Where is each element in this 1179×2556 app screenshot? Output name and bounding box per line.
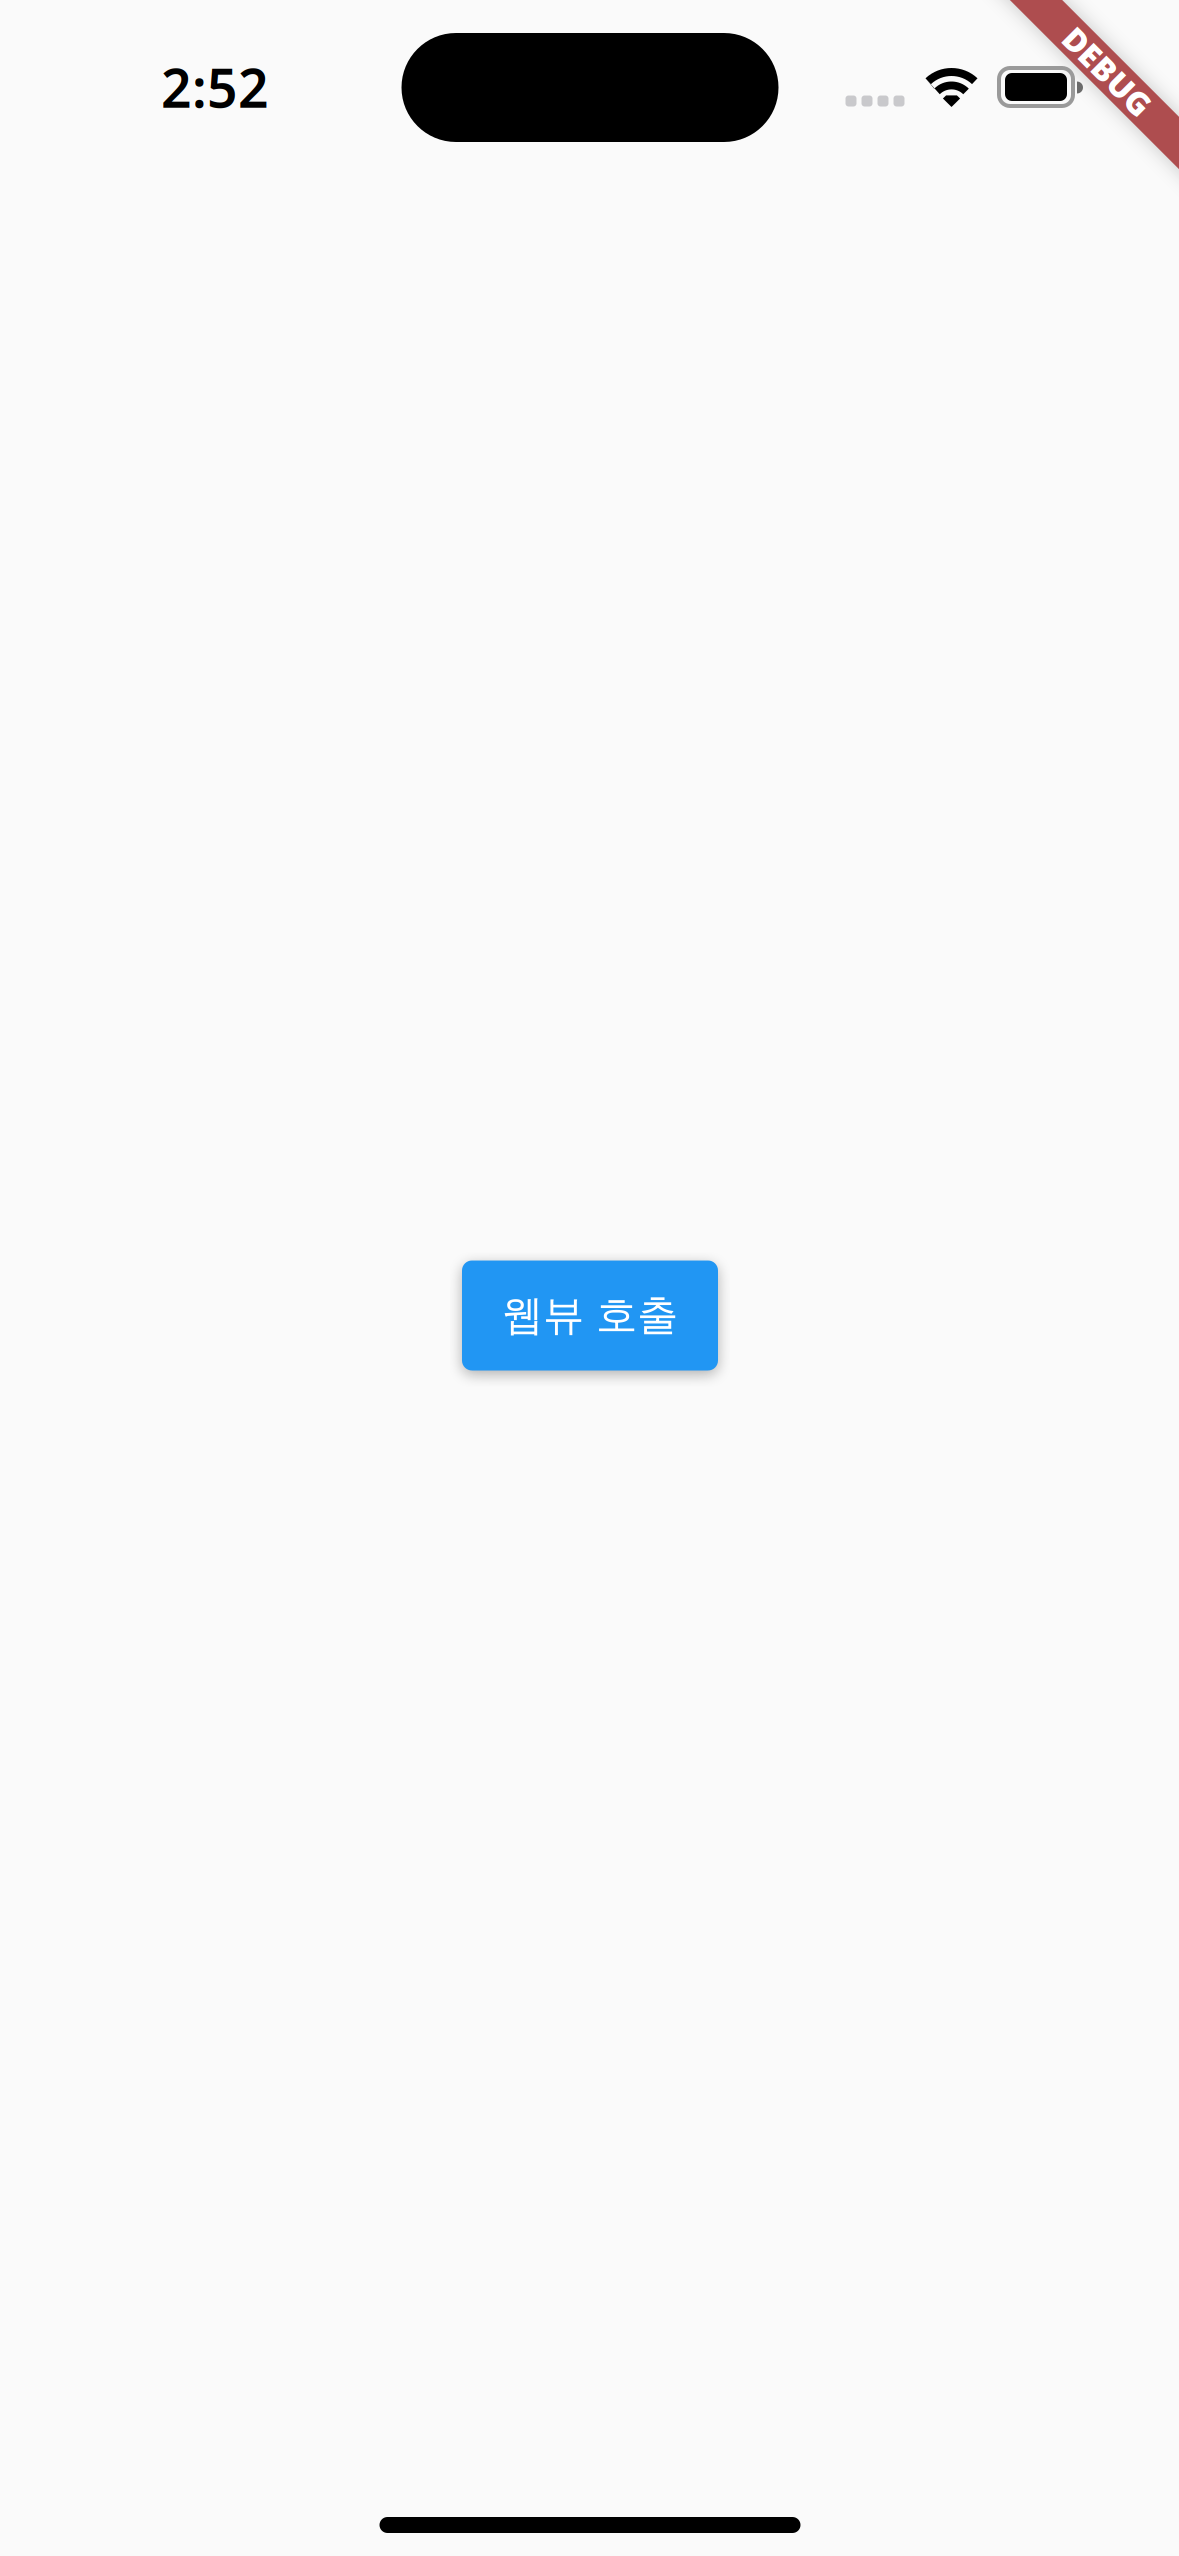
staticText: DEBUG [1052,50,1163,93]
staticText: 웹뷰 호출 [502,1290,678,1341]
button[interactable]: 웹뷰 호출 [462,1260,718,1370]
staticText: 2:52 [161,52,269,122]
